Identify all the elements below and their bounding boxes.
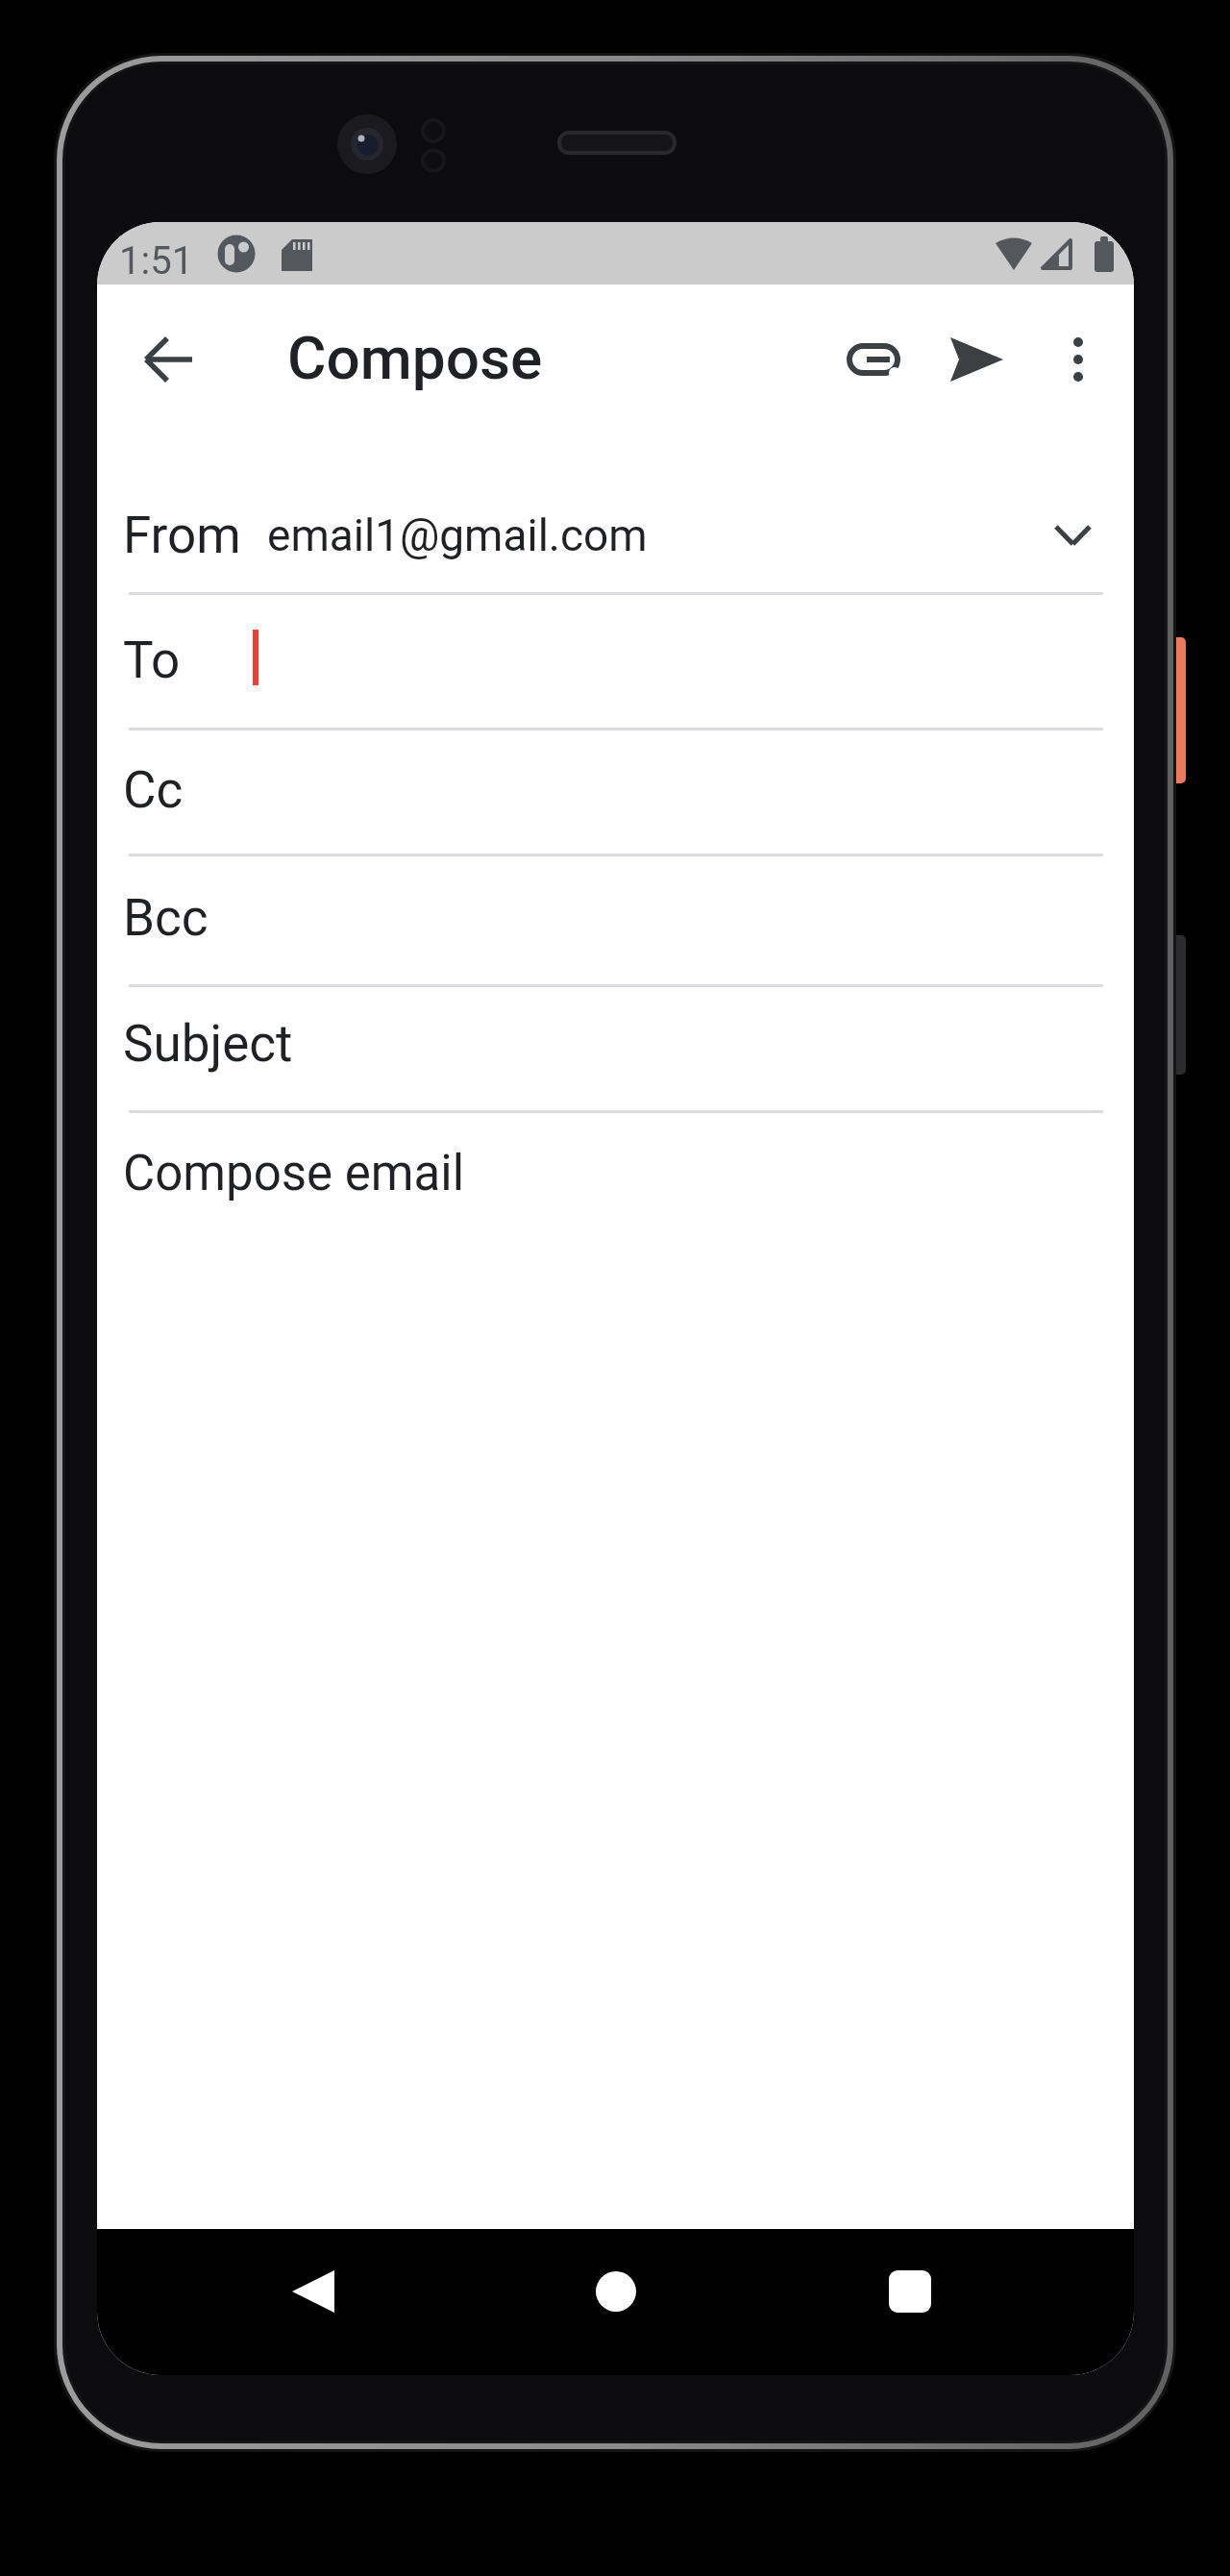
button[interactable] <box>944 326 1011 393</box>
staticText: Subject <box>123 1014 293 1074</box>
staticText: Compose <box>287 323 543 393</box>
button[interactable] <box>135 326 203 393</box>
staticText: email1@gmail.com <box>267 509 648 561</box>
button[interactable] <box>573 2248 659 2335</box>
staticText: Compose email <box>123 1145 465 1202</box>
button[interactable]: Bcc <box>97 856 1134 984</box>
button[interactable]: Cc <box>97 731 1134 854</box>
button[interactable] <box>270 2248 357 2335</box>
staticText: From <box>123 506 241 565</box>
button[interactable]: Subject <box>97 987 1134 1110</box>
button[interactable] <box>1045 326 1112 393</box>
button[interactable] <box>867 2248 953 2335</box>
staticText: Cc <box>123 760 184 820</box>
button[interactable] <box>840 326 907 393</box>
button[interactable]: Compose email <box>97 1113 1134 1238</box>
button[interactable]: To <box>97 595 1134 728</box>
staticText: To <box>123 631 181 690</box>
staticText: 1:51 <box>119 238 194 284</box>
button[interactable]: From <box>97 478 1134 592</box>
staticText: Bcc <box>123 888 209 948</box>
